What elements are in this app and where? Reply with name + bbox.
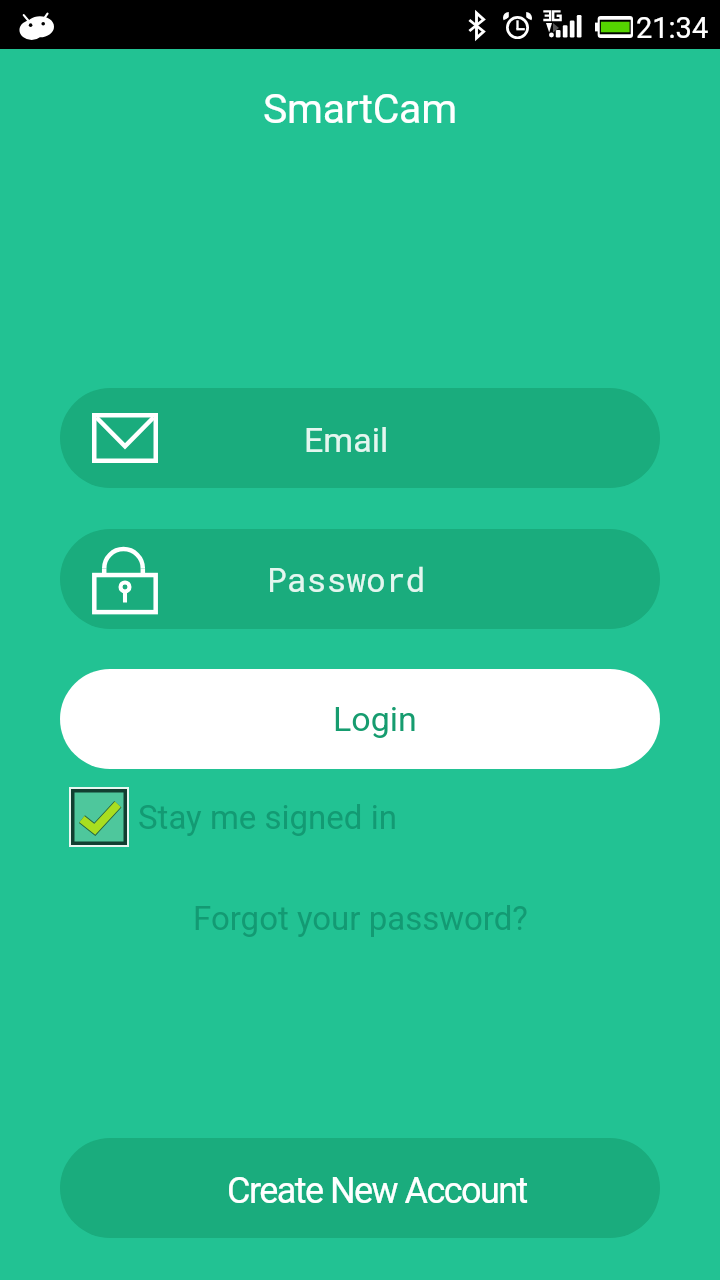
other: Email bbox=[92, 413, 158, 463]
other: Bluetooth bbox=[468, 13, 485, 38]
other: Network 3G bbox=[543, 8, 582, 38]
staticText: Forgot your password? bbox=[193, 899, 528, 938]
staticText: Password bbox=[267, 557, 426, 601]
button[interactable]: Login bbox=[60, 669, 660, 769]
staticText: Create New Account bbox=[227, 1170, 527, 1212]
staticText: SmartCam bbox=[263, 85, 457, 133]
button[interactable]: Stay me signed in bbox=[69, 787, 403, 847]
other: Alarm bbox=[503, 12, 532, 38]
other: Password bbox=[92, 543, 158, 615]
staticText: Email bbox=[304, 420, 389, 460]
button[interactable]: Password bbox=[60, 529, 660, 629]
button[interactable]: Create New Account bbox=[60, 1138, 660, 1238]
button[interactable]: Forgot your password? bbox=[189, 899, 532, 938]
staticText: Login bbox=[333, 699, 417, 739]
staticText: 21:34 bbox=[636, 11, 709, 45]
other: Battery bbox=[595, 16, 633, 38]
button[interactable]: Email bbox=[60, 388, 660, 488]
staticText: Stay me signed in bbox=[138, 798, 397, 837]
